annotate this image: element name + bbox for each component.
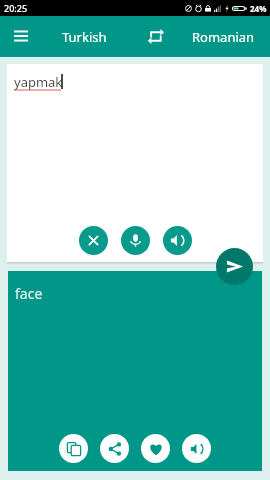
button[interactable]: Voice input	[121, 226, 150, 255]
button[interactable]: Favorite	[141, 434, 170, 463]
button[interactable]: Turkish	[42, 16, 126, 57]
button[interactable]: Translate	[216, 248, 253, 285]
staticText: Turkish	[62, 28, 107, 46]
staticText: face	[15, 284, 43, 303]
staticText: 24%	[250, 3, 267, 14]
button[interactable]: Copy	[59, 434, 88, 463]
staticText: yapmak	[14, 73, 63, 91]
button[interactable]: Menu	[1, 17, 41, 57]
staticText: Romanian	[192, 28, 255, 46]
button[interactable]: Romanian	[181, 16, 265, 57]
staticText: 20:25	[4, 2, 28, 14]
button[interactable]: Share	[100, 434, 129, 463]
button[interactable]: Clear text	[79, 226, 108, 255]
button[interactable]: Listen	[163, 226, 192, 255]
button[interactable]: Swap languages	[136, 17, 176, 57]
button[interactable]: Listen	[182, 434, 211, 463]
